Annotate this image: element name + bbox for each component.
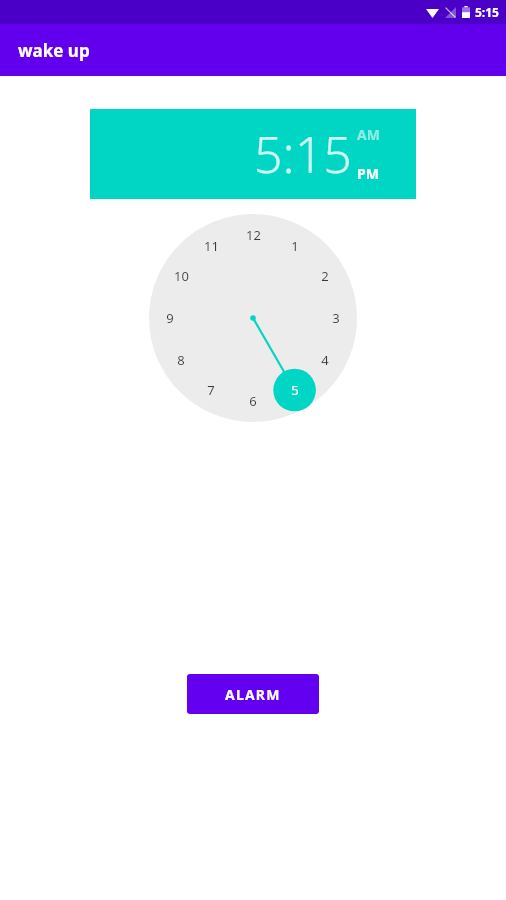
staticText: 2 [321,267,329,285]
button[interactable]: Clock time picker [149,214,357,422]
staticText: 6 [249,392,257,410]
staticText: 9 [166,309,174,327]
button[interactable]: 5:15 [90,109,416,199]
staticText: 5:15 [475,4,499,20]
staticText: ALARM [225,685,281,704]
button[interactable]: PM [357,164,379,183]
staticText: 5 [291,381,299,399]
staticText: 7 [207,381,215,399]
staticText: 10 [174,267,189,285]
button[interactable]: AM [357,125,380,144]
staticText: 1 [291,237,299,255]
staticText: 12 [246,226,261,244]
staticText: 8 [177,351,185,369]
staticText: 3 [332,309,340,327]
staticText: 11 [204,237,219,255]
staticText: 4 [321,351,329,369]
staticText: wake up [18,39,90,62]
button[interactable]: ALARM [187,674,319,714]
staticText: 5:15 [254,120,352,188]
